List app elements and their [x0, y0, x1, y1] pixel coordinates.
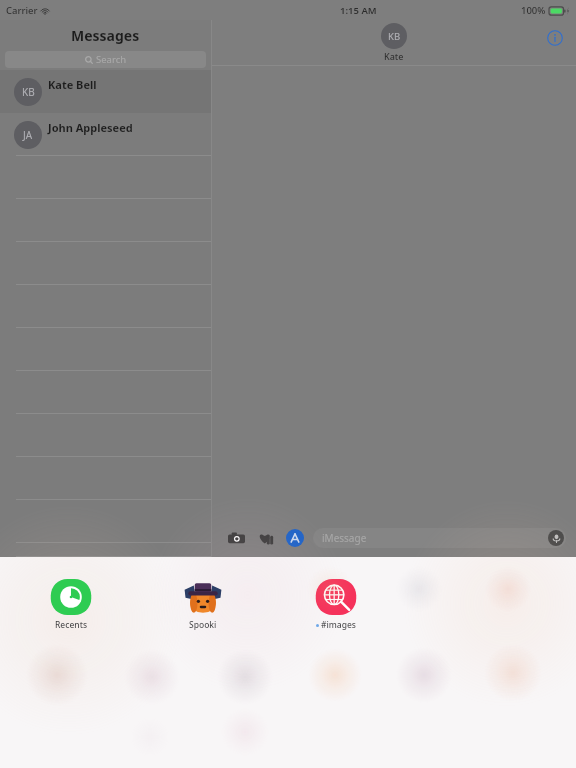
staticText: #images	[321, 619, 356, 631]
button[interactable]: App Store	[286, 529, 304, 547]
button[interactable]: Dictate	[548, 530, 564, 546]
button[interactable]: KB	[0, 70, 211, 113]
button[interactable]: #images	[313, 579, 359, 631]
button[interactable]: Camera	[226, 528, 246, 548]
staticText: iMessage	[322, 531, 367, 545]
button[interactable]: JA	[0, 113, 211, 156]
button[interactable]: Details	[546, 29, 564, 47]
button[interactable]: Digital Touch	[256, 528, 276, 548]
staticText: Spooki	[189, 619, 217, 631]
staticText: 1:15 AM	[340, 4, 377, 17]
button[interactable]: Spooki	[180, 579, 226, 631]
button[interactable]: iMessage	[313, 528, 566, 548]
staticText: KB	[388, 30, 401, 43]
staticText: JA	[23, 128, 33, 142]
button[interactable]: KB	[381, 23, 407, 49]
staticText: Messages	[71, 26, 140, 45]
staticText: Recents	[55, 619, 88, 631]
staticText: 100%	[521, 4, 546, 17]
staticText: Carrier	[6, 4, 38, 17]
staticText: John Appleseed	[48, 120, 133, 135]
button[interactable]: Search	[5, 51, 206, 68]
staticText: Kate Bell	[48, 77, 97, 92]
staticText: Search	[96, 53, 127, 66]
staticText: KB	[22, 85, 35, 99]
staticText: Kate	[384, 50, 404, 62]
button[interactable]: Recents	[48, 579, 94, 631]
